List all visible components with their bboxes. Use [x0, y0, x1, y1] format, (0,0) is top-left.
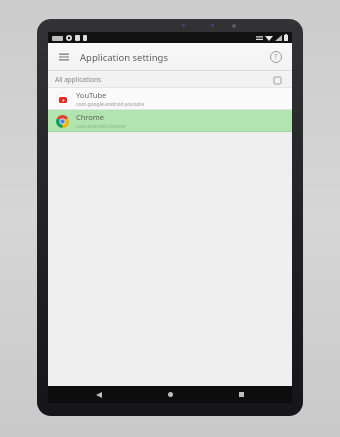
staticText: YouTube — [76, 90, 107, 100]
button[interactable]: Chrome — [48, 110, 292, 132]
staticText: com.google.android.youtube — [76, 101, 145, 108]
staticText: ? — [274, 52, 278, 62]
button[interactable]: YouTube — [48, 88, 292, 110]
button[interactable]: Back — [79, 386, 119, 403]
button[interactable]: Home — [150, 386, 190, 403]
staticText: Chrome — [76, 112, 105, 122]
staticText: com.android.chrome — [76, 123, 126, 130]
button[interactable]: Menu — [54, 47, 74, 67]
staticText: All applications — [55, 75, 102, 84]
button[interactable]: Select all — [270, 73, 284, 87]
button[interactable]: Help — [267, 48, 285, 66]
staticText: Application settings — [80, 51, 168, 64]
button[interactable]: Recent apps — [221, 386, 261, 403]
